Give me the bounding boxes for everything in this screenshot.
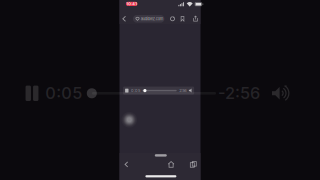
button[interactable]: Pause [19, 80, 45, 106]
staticText: 0:05 [131, 88, 140, 93]
staticText: -2:56 [218, 83, 260, 103]
button[interactable]: Bookmarks [178, 14, 186, 24]
button[interactable]: Reload [168, 14, 176, 24]
button[interactable]: audiblez.com [133, 15, 164, 23]
staticText: audiblez.com [141, 16, 164, 21]
button[interactable]: Back [120, 158, 132, 170]
staticText: 2:56 [179, 88, 186, 93]
button[interactable]: Home [165, 158, 177, 170]
button[interactable]: Back [119, 13, 129, 25]
button[interactable]: Share [191, 14, 199, 24]
button[interactable]: Volume [268, 80, 296, 106]
button[interactable]: Tabs [187, 158, 199, 170]
staticText: 10:41 [126, 1, 137, 6]
staticText: 0:05 [45, 83, 82, 103]
